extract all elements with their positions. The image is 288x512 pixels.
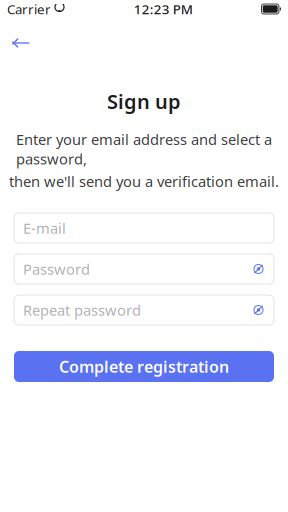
staticText: E-mail (23, 218, 66, 238)
staticText: Password (23, 259, 90, 279)
button[interactable]: Password (14, 254, 274, 284)
staticText: then we'll send you a verification email… (9, 171, 279, 191)
button[interactable]: Complete registration (14, 351, 274, 382)
button[interactable]: E-mail (14, 213, 274, 243)
staticText: Sign up (107, 88, 181, 115)
staticText: Carrier (7, 0, 51, 18)
staticText: 12:23 PM (134, 0, 193, 18)
button[interactable]: Back (0, 28, 40, 58)
staticText: Repeat password (23, 300, 141, 320)
staticText: Enter your email address and select a pa… (16, 130, 272, 169)
staticText: Complete registration (59, 356, 229, 377)
button[interactable]: Repeat password (14, 295, 274, 325)
